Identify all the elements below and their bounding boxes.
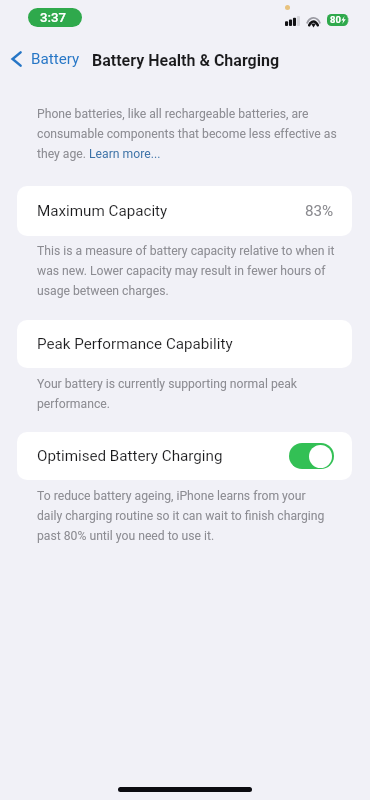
staticText: Phone batteries, like all rechargeable b…	[37, 102, 357, 162]
staticText: 3:37	[40, 10, 66, 25]
button[interactable]: Optimised Battery Charging	[17, 432, 352, 480]
staticText: Battery	[31, 50, 80, 68]
staticText: Maximum Capacity	[37, 202, 168, 220]
staticText: This is a measure of battery capacity re…	[37, 239, 357, 299]
staticText: Your battery is currently supporting nor…	[37, 372, 357, 412]
staticText: 83%	[305, 202, 334, 220]
button[interactable]: Peak Performance Capability	[17, 320, 352, 368]
button[interactable]: Maximum Capacity	[17, 186, 352, 236]
staticText: Optimised Battery Charging	[37, 447, 223, 465]
staticText: Peak Performance Capability	[37, 335, 233, 353]
staticText: To reduce battery ageing, iPhone learns …	[37, 484, 357, 544]
button[interactable]: Battery	[5, 46, 86, 72]
staticText: Battery Health & Charging	[92, 51, 280, 70]
button[interactable]: Optimised Battery Charging toggle	[289, 443, 334, 469]
staticText: 80	[330, 14, 341, 25]
